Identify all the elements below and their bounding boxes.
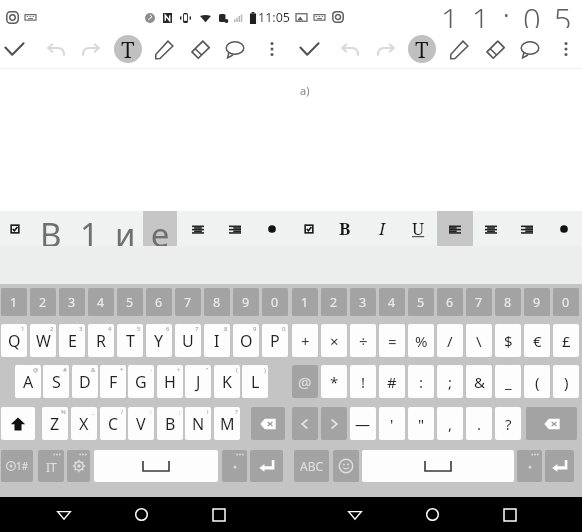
button[interactable]: ; <box>437 365 463 398</box>
button[interactable]: \ <box>466 324 492 357</box>
button[interactable]: Z <box>42 407 68 440</box>
button[interactable]: 1 <box>1 288 27 316</box>
button[interactable]: 0 <box>262 288 288 316</box>
button[interactable]: — <box>350 407 376 440</box>
button[interactable]: / <box>437 324 463 357</box>
button[interactable]: Done <box>292 32 326 66</box>
button[interactable]: E <box>59 324 85 357</box>
button[interactable]: Eraser <box>478 32 512 66</box>
button[interactable]: Y <box>146 324 172 357</box>
button[interactable]: 3 <box>350 288 376 316</box>
button[interactable]: Settings <box>67 450 90 482</box>
button[interactable]: Back <box>47 497 81 532</box>
button[interactable]: 5 <box>117 288 143 316</box>
button[interactable]: Previous page <box>292 407 318 440</box>
button[interactable]: T <box>117 324 143 357</box>
button[interactable]: B <box>157 407 183 440</box>
button[interactable]: Back <box>338 497 372 532</box>
button[interactable]: Text tool <box>114 35 142 63</box>
button[interactable]: L <box>242 365 268 398</box>
button[interactable]: 3 <box>59 288 85 316</box>
button[interactable]: 5 <box>408 288 434 316</box>
button[interactable]: R <box>88 324 114 357</box>
button[interactable]: M <box>214 407 240 440</box>
button[interactable]: Period <box>222 450 247 482</box>
button[interactable]: Backspace <box>526 407 577 440</box>
button[interactable]: Home <box>124 497 158 532</box>
button[interactable]: Home <box>415 497 449 532</box>
button[interactable]: K <box>214 365 240 398</box>
button[interactable]: Bullet list <box>546 211 582 246</box>
button[interactable]: O <box>233 324 259 357</box>
button[interactable]: _ <box>495 365 521 398</box>
button[interactable]: V <box>128 407 154 440</box>
button[interactable]: X <box>71 407 97 440</box>
button[interactable]: $ <box>495 324 521 357</box>
button[interactable]: C <box>100 407 126 440</box>
button[interactable]: format I <box>364 211 400 246</box>
button[interactable]: Next page <box>321 407 347 440</box>
button[interactable]: £ <box>553 324 579 357</box>
button[interactable]: Language <box>38 450 64 482</box>
button[interactable]: format и <box>107 211 143 246</box>
button[interactable]: Undo <box>39 32 73 66</box>
button[interactable]: I <box>204 324 230 357</box>
button[interactable]: 4 <box>379 288 405 316</box>
button[interactable]: Recents <box>493 497 527 532</box>
button[interactable]: ? <box>495 407 521 440</box>
button[interactable]: " <box>408 407 434 440</box>
button[interactable]: format B <box>327 211 363 246</box>
button[interactable]: 6 <box>437 288 463 316</box>
button[interactable]: D <box>72 365 98 398</box>
button[interactable]: U <box>175 324 201 357</box>
button[interactable]: + <box>292 324 318 357</box>
button[interactable]: ! <box>350 365 376 398</box>
button[interactable]: 7 <box>175 288 201 316</box>
button[interactable]: ' <box>379 407 405 440</box>
button[interactable]: Align left <box>437 211 473 246</box>
button[interactable]: J <box>185 365 211 398</box>
button[interactable]: Recents <box>202 497 236 532</box>
button[interactable]: Pen <box>442 32 476 66</box>
button[interactable]: format 1 <box>72 211 107 246</box>
button[interactable]: 9 <box>233 288 259 316</box>
button[interactable]: € <box>524 324 550 357</box>
button[interactable]: Comment <box>218 32 252 66</box>
button[interactable]: × <box>321 324 347 357</box>
button[interactable]: W <box>30 324 56 357</box>
button[interactable]: Shift <box>1 407 35 440</box>
button[interactable]: Comment <box>513 32 547 66</box>
button[interactable]: Align right <box>216 211 253 246</box>
button[interactable]: format В <box>30 211 72 246</box>
button[interactable]: % <box>408 324 434 357</box>
button[interactable]: Q <box>1 324 27 357</box>
button[interactable]: , <box>437 407 463 440</box>
button[interactable]: More options <box>255 32 289 66</box>
button[interactable]: P <box>262 324 288 357</box>
button[interactable]: # <box>379 365 405 398</box>
button[interactable]: 1 <box>292 288 318 316</box>
button[interactable]: Symbols <box>1 450 33 482</box>
button[interactable]: Enter <box>250 450 283 482</box>
button[interactable]: 0 <box>553 288 579 316</box>
button[interactable]: S <box>43 365 69 398</box>
button[interactable]: ÷ <box>350 324 376 357</box>
button[interactable]: Redo <box>74 32 108 66</box>
button[interactable]: Checklist <box>291 211 327 246</box>
button[interactable]: Align right <box>509 211 545 246</box>
button[interactable]: 9 <box>524 288 550 316</box>
button[interactable]: G <box>128 365 154 398</box>
button[interactable]: ( <box>524 365 550 398</box>
button[interactable]: Done <box>0 32 31 66</box>
button[interactable]: Undo <box>333 32 367 66</box>
button[interactable]: 8 <box>204 288 230 316</box>
button[interactable]: 7 <box>466 288 492 316</box>
button[interactable]: . <box>466 407 492 440</box>
button[interactable]: 4 <box>88 288 114 316</box>
button[interactable]: * <box>321 365 347 398</box>
button[interactable]: Space <box>362 450 514 482</box>
button[interactable]: Bullet list <box>253 211 291 246</box>
button[interactable]: : <box>408 365 434 398</box>
button[interactable]: format U <box>400 211 436 246</box>
button[interactable]: 2 <box>321 288 347 316</box>
